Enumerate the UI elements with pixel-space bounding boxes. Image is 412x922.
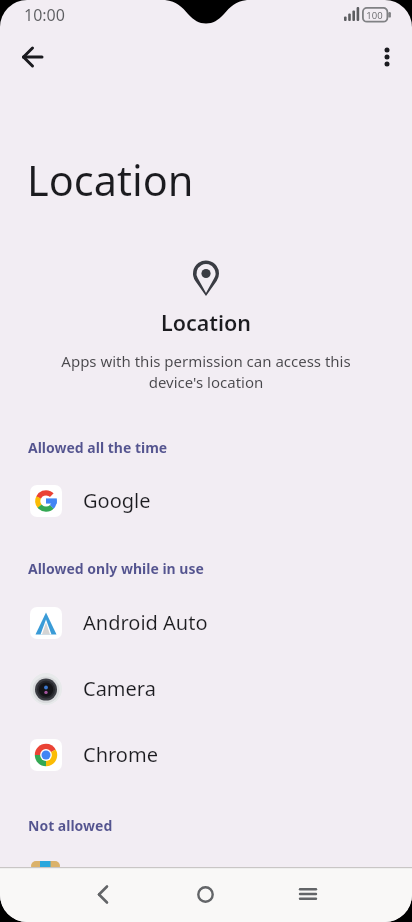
button[interactable]	[181, 870, 229, 918]
staticText: Apps with this permission can access thi…	[0, 351, 412, 393]
staticText: 10:00	[24, 4, 65, 26]
staticText: Not allowed	[28, 816, 113, 835]
button[interactable]: Android Auto	[0, 590, 412, 656]
staticText: Location	[0, 308, 412, 337]
staticText: 100	[366, 9, 383, 22]
button[interactable]	[79, 870, 127, 918]
staticText: Location	[27, 152, 194, 209]
button[interactable]	[363, 33, 411, 81]
button[interactable]: Google	[0, 468, 412, 534]
button[interactable]	[284, 870, 332, 918]
staticText: Android Auto	[83, 609, 208, 636]
button[interactable]	[9, 33, 57, 81]
staticText: Google	[83, 487, 151, 514]
staticText: Camera	[83, 675, 156, 702]
button[interactable]: Chrome	[0, 722, 412, 788]
staticText: Allowed all the time	[28, 438, 168, 457]
staticText: Allowed only while in use	[28, 559, 204, 578]
staticText: Chrome	[83, 741, 158, 768]
button[interactable]: Camera	[0, 656, 412, 722]
